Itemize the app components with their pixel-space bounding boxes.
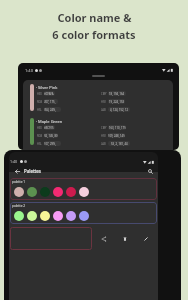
staticText: 207, 175, 172 [44, 100, 58, 104]
staticText: HEX [37, 126, 42, 130]
staticText: 92, 145, 80 [44, 134, 58, 138]
staticText: 354, 24%, 74% [44, 108, 61, 112]
staticText: palette 1 [12, 180, 26, 184]
staticText: HSL [37, 142, 42, 146]
staticText: Maple Green [38, 119, 63, 124]
staticText: Silver Pink [38, 85, 58, 90]
staticText: 4, 124, 152, 12 [110, 108, 129, 112]
button[interactable]: palette 2 [10, 202, 157, 224]
staticText: 109, 248, 145 [108, 134, 125, 138]
staticText: #CFAFAC [44, 92, 55, 96]
staticText: HSL [37, 108, 42, 112]
staticText: Color name & [57, 10, 132, 25]
button[interactable]: Search [146, 167, 155, 176]
button[interactable]: Delete [119, 233, 130, 244]
staticText: LAB [101, 108, 106, 112]
staticText: RGB [37, 100, 43, 104]
staticText: 107, 29%, 44% [44, 142, 61, 146]
staticText: CMY [101, 92, 107, 96]
staticText: Palettes [24, 168, 41, 174]
button[interactable]: Edit [140, 233, 151, 244]
staticText: 163, 110, 175 [109, 126, 126, 130]
staticText: 19, 224, 153 [109, 100, 125, 104]
staticText: HSV [101, 100, 106, 104]
staticText: 53, 2, 181, 44 [111, 142, 128, 146]
staticText: LAB [101, 142, 106, 146]
staticText: 6 color formats [52, 27, 136, 42]
button[interactable]: Share [98, 233, 109, 244]
staticText: CMY [101, 126, 107, 130]
staticText: 18, 194, 164 [109, 92, 125, 96]
button[interactable]: palette 1 [10, 178, 157, 200]
staticText: HEX [37, 92, 42, 96]
staticText: 1:40 [25, 68, 33, 73]
staticText: RGB [37, 134, 43, 138]
staticText: #5C9150 [44, 126, 55, 130]
button[interactable]: Back [13, 167, 22, 176]
staticText: palette 2 [12, 204, 26, 208]
staticText: HSV [101, 134, 106, 138]
staticText: 1:40 [10, 159, 18, 164]
